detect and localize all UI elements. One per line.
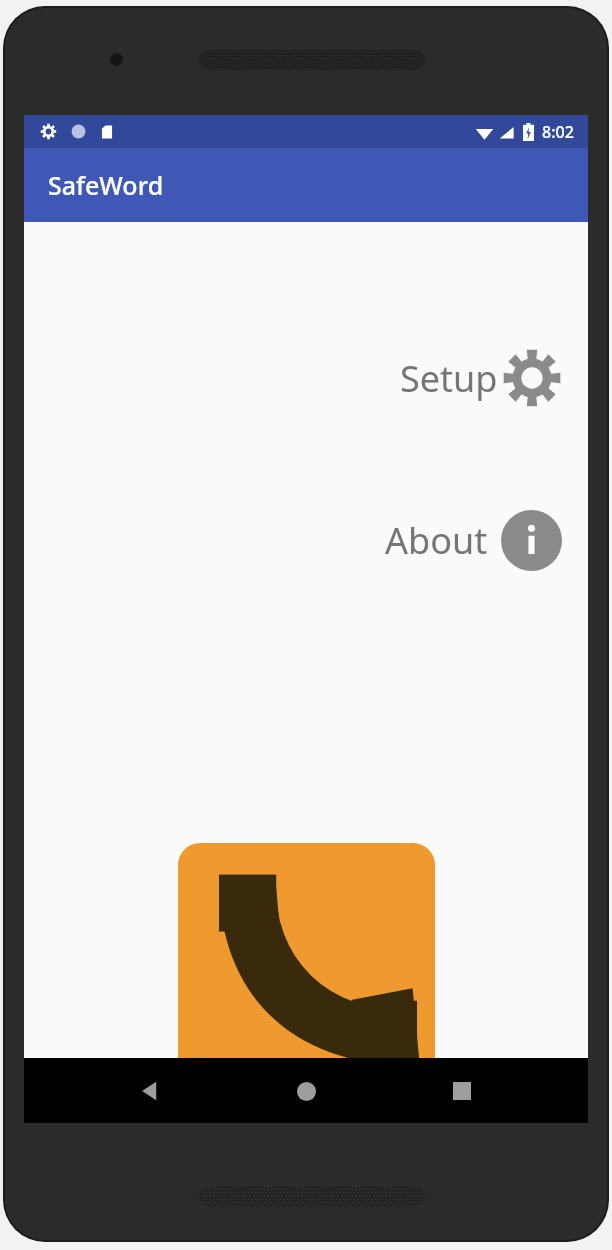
- staticText: 8:02: [542, 121, 574, 143]
- other: Setup: [502, 348, 562, 408]
- button[interactable]: Home: [276, 1061, 336, 1121]
- other: About: [501, 510, 562, 571]
- button[interactable]: CALL: [178, 843, 435, 1131]
- staticText: Setup: [400, 354, 498, 403]
- button[interactable]: Back: [120, 1061, 180, 1121]
- button[interactable]: About: [385, 510, 562, 571]
- staticText: About: [385, 516, 488, 565]
- staticText: SafeWord: [48, 168, 164, 202]
- staticText: CALL: [274, 1093, 339, 1131]
- button[interactable]: Recent apps: [432, 1061, 492, 1121]
- button[interactable]: Setup: [400, 348, 562, 408]
